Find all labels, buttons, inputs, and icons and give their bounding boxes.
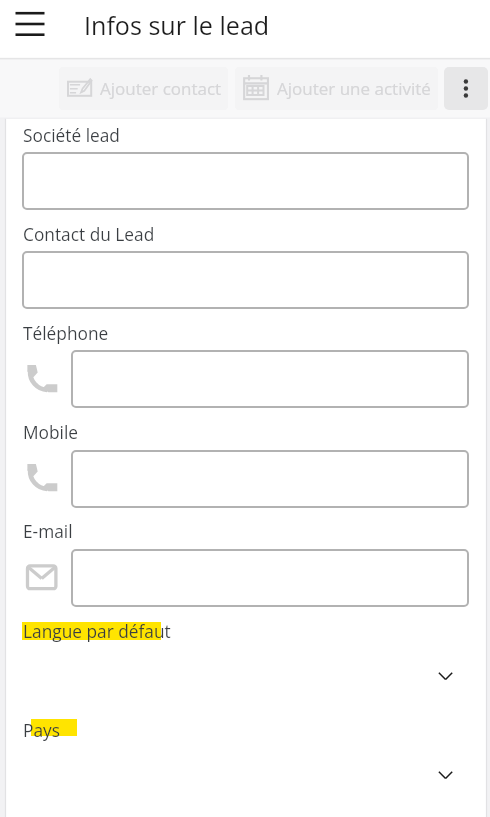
button[interactable] bbox=[71, 450, 469, 508]
button[interactable]: Open list bbox=[430, 664, 460, 688]
staticText: Infos sur le lead bbox=[84, 8, 270, 42]
staticText: Mobile bbox=[23, 421, 78, 445]
staticText: Ajouter contact bbox=[100, 77, 222, 100]
button[interactable] bbox=[22, 251, 469, 309]
staticText: Contact du Lead bbox=[23, 223, 155, 247]
staticText: Langue par défaut bbox=[23, 620, 171, 644]
button[interactable]: Ajouter contact bbox=[59, 67, 228, 110]
button[interactable]: More options bbox=[444, 67, 488, 110]
staticText: Pays bbox=[23, 719, 60, 743]
button[interactable]: Open list bbox=[430, 763, 460, 787]
button[interactable] bbox=[71, 549, 469, 607]
other: Email bbox=[24, 562, 60, 592]
staticText: Ajouter une activité bbox=[277, 77, 431, 100]
button[interactable] bbox=[71, 350, 469, 408]
staticText: Téléphone bbox=[23, 322, 109, 346]
button[interactable] bbox=[22, 152, 469, 210]
staticText: Société lead bbox=[23, 124, 120, 148]
other: Call bbox=[26, 461, 60, 495]
staticText: E-mail bbox=[23, 520, 73, 544]
button[interactable]: Menu bbox=[6, 0, 54, 48]
other: Call bbox=[26, 362, 60, 396]
button[interactable]: Ajouter une activité bbox=[235, 67, 438, 110]
